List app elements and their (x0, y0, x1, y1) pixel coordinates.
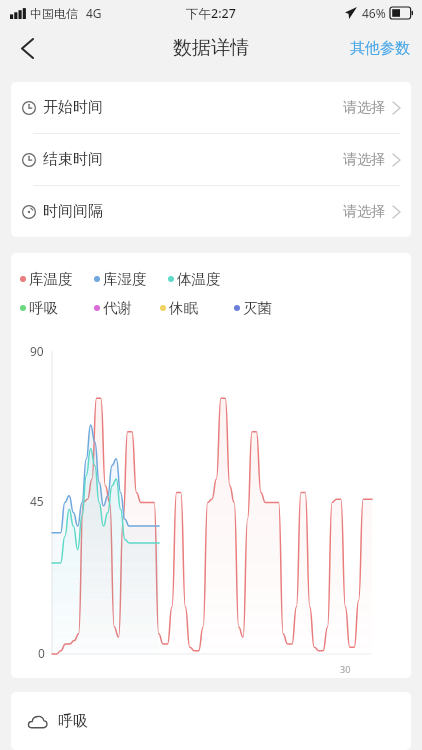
staticText: 开始时间 (43, 98, 103, 117)
button[interactable]: Back (6, 27, 48, 69)
staticText: 30 (340, 663, 351, 675)
staticText: 中国电信 (30, 6, 78, 21)
staticText: 代谢 (103, 299, 132, 317)
staticText: 45 (30, 493, 44, 509)
staticText: 呼吸 (58, 712, 88, 731)
button[interactable]: 结束时间 (11, 134, 411, 185)
staticText: 呼吸 (29, 299, 58, 317)
button[interactable]: 其他参数 (346, 33, 414, 64)
staticText: 休眠 (169, 299, 198, 317)
staticText: 0 (38, 645, 45, 661)
button[interactable]: 时间间隔 (11, 186, 411, 237)
button[interactable]: 库温度 (20, 270, 73, 288)
staticText: 4G (86, 5, 102, 21)
staticText: 结束时间 (43, 150, 103, 169)
button[interactable]: 体温度 (168, 270, 221, 288)
staticText: 请选择 (343, 99, 385, 117)
button[interactable]: 代谢 (94, 299, 132, 317)
staticText: 体温度 (177, 270, 221, 288)
button[interactable]: 呼吸 (20, 299, 58, 317)
button[interactable]: 呼吸 (11, 692, 411, 750)
staticText: 库湿度 (103, 270, 147, 288)
staticText: 库温度 (29, 270, 73, 288)
staticText: 时间间隔 (43, 202, 103, 221)
staticText: 请选择 (343, 151, 385, 169)
staticText: 下午2:27 (186, 5, 236, 22)
button[interactable]: 库湿度 (94, 270, 147, 288)
staticText: 90 (30, 343, 44, 359)
staticText: 数据详情 (173, 36, 249, 60)
staticText: 46% (362, 5, 386, 21)
staticText: 灭菌 (243, 299, 272, 317)
staticText: 请选择 (343, 203, 385, 221)
button[interactable]: 休眠 (160, 299, 198, 317)
button[interactable]: 灭菌 (234, 299, 272, 317)
button[interactable]: 开始时间 (11, 82, 411, 133)
